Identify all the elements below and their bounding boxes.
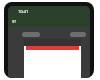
button[interactable] <box>22 32 40 37</box>
staticText: ¥? <box>12 19 17 24</box>
staticText: 10:41 <box>18 9 29 14</box>
button[interactable] <box>70 32 86 37</box>
